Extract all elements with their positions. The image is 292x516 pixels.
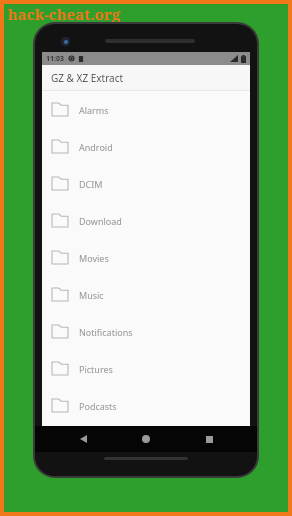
- staticText: Music: [79, 289, 104, 301]
- staticText: Pictures: [79, 363, 113, 375]
- button[interactable]: DCIM: [42, 165, 250, 202]
- staticText: hack-cheat.org: [8, 4, 121, 24]
- staticText: Download: [79, 215, 122, 227]
- button[interactable]: Notifications: [42, 313, 250, 350]
- button[interactable]: Home: [136, 429, 156, 449]
- staticText: Android: [79, 141, 113, 153]
- button[interactable]: Alarms: [42, 91, 250, 128]
- staticText: Alarms: [79, 104, 109, 116]
- staticText: DCIM: [79, 178, 103, 190]
- button[interactable]: Recent apps: [199, 429, 219, 449]
- staticText: Podcasts: [79, 400, 117, 412]
- staticText: GZ & XZ Extract: [51, 71, 124, 85]
- button[interactable]: Android: [42, 128, 250, 165]
- button[interactable]: Pictures: [42, 350, 250, 387]
- staticText: 11:03: [46, 54, 64, 64]
- button[interactable]: Music: [42, 276, 250, 313]
- button[interactable]: Download: [42, 202, 250, 239]
- button[interactable]: GZ & XZ Extract: [42, 65, 250, 90]
- staticText: Notifications: [79, 326, 133, 338]
- button[interactable]: Podcasts: [42, 387, 250, 424]
- button[interactable]: Back: [73, 429, 93, 449]
- button[interactable]: Movies: [42, 239, 250, 276]
- staticText: Movies: [79, 252, 109, 264]
